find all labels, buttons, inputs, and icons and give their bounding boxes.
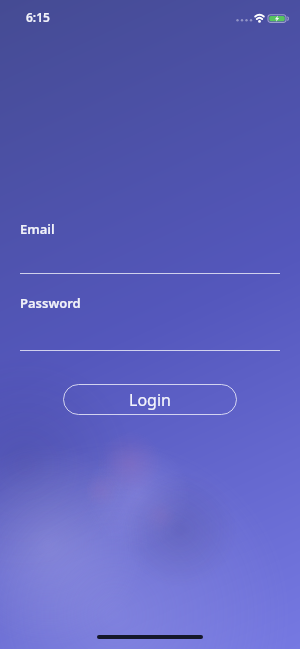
staticText: Login xyxy=(129,389,171,411)
staticText: 6:15 xyxy=(26,9,50,25)
staticText: Email xyxy=(20,220,55,238)
staticText: Password xyxy=(20,294,81,312)
button[interactable]: Login xyxy=(63,384,237,415)
